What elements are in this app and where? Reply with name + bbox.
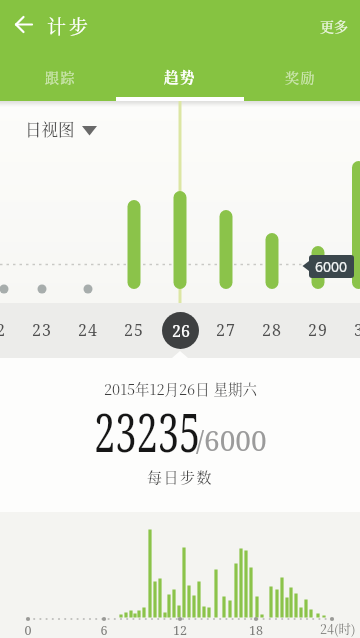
- staticText: 2015年12月26日 星期六: [104, 378, 257, 399]
- staticText: /6000: [196, 421, 267, 459]
- staticText: 26: [172, 320, 190, 342]
- staticText: 12: [170, 622, 190, 638]
- button[interactable]: 27: [203, 307, 249, 353]
- button[interactable]: 29: [295, 307, 341, 353]
- staticText: 趋势: [164, 66, 196, 87]
- staticText: 23235: [94, 396, 201, 467]
- staticText: 跟踪: [45, 67, 76, 87]
- button[interactable]: 25: [111, 307, 157, 353]
- staticText: 计步: [47, 12, 92, 39]
- button[interactable]: 26: [157, 307, 203, 353]
- staticText: 28: [262, 319, 282, 341]
- staticText: 日视图: [25, 117, 75, 141]
- button[interactable]: 奖励: [240, 51, 360, 102]
- button[interactable]: 跟踪: [0, 51, 120, 102]
- staticText: 24(时): [320, 620, 356, 638]
- button[interactable]: 日视图: [16, 111, 85, 145]
- staticText: 23: [32, 319, 52, 341]
- button[interactable]: 30: [341, 307, 360, 353]
- button[interactable]: 22: [0, 307, 19, 353]
- staticText: 0: [18, 622, 38, 638]
- staticText: 25: [124, 319, 144, 341]
- staticText: 24: [78, 319, 98, 341]
- staticText: 每日步数: [147, 466, 214, 488]
- staticText: 22: [0, 319, 6, 341]
- staticText: 30: [354, 319, 360, 341]
- button[interactable]: 28: [249, 307, 295, 353]
- button[interactable]: 趋势: [120, 51, 240, 102]
- button[interactable]: [0, 0, 47, 48]
- staticText: 18: [246, 622, 266, 638]
- staticText: 6: [94, 622, 114, 638]
- staticText: 更多: [320, 16, 348, 36]
- button[interactable]: 24: [65, 307, 111, 353]
- button[interactable]: 更多: [320, 0, 360, 48]
- staticText: 27: [216, 319, 236, 341]
- staticText: 6000: [315, 257, 348, 276]
- staticText: 29: [308, 319, 328, 341]
- staticText: 奖励: [285, 67, 316, 87]
- button[interactable]: 23: [19, 307, 65, 353]
